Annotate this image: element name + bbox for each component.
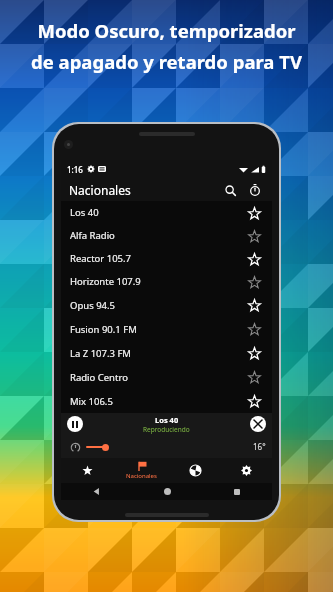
staticText: Reactor 105.7	[70, 252, 132, 265]
button[interactable]: Favorito	[244, 226, 264, 246]
staticText: Modo Oscuro, temporizador	[37, 18, 296, 43]
button[interactable]: Radio Centro	[61, 365, 272, 389]
staticText: Reproduciendo	[143, 425, 190, 434]
button[interactable]: Reactor 105.7	[61, 247, 272, 270]
staticText: de apagado y retardo para TV	[31, 49, 302, 74]
button[interactable]: Favorito	[244, 272, 264, 292]
staticText: Alfa Radio	[70, 229, 115, 242]
button[interactable]: Internacionales	[170, 458, 221, 483]
button[interactable]: Favorito	[244, 391, 264, 411]
button[interactable]: Horizonte 107.9	[61, 270, 272, 293]
button[interactable]: Mix 106.5	[61, 389, 272, 413]
button[interactable]: Atrás	[61, 483, 132, 500]
button[interactable]: Favorito	[244, 249, 264, 269]
staticText: Los 40	[70, 206, 99, 219]
button[interactable]: Opus 94.5	[61, 293, 272, 317]
staticText: Horizonte 107.9	[70, 275, 141, 288]
staticText: 16°	[253, 441, 266, 452]
button[interactable]: Favorito	[244, 343, 264, 363]
button[interactable]: La Z 107.3 FM	[61, 341, 272, 365]
button[interactable]: Inicio	[132, 483, 202, 500]
button[interactable]: Buscar	[220, 180, 240, 200]
staticText: Opus 94.5	[70, 299, 116, 312]
button[interactable]: Fusion 90.1 FM	[61, 317, 272, 341]
button[interactable]: Favorito	[244, 319, 264, 339]
button[interactable]: Favorito	[244, 295, 264, 315]
button[interactable]: Favorito	[244, 203, 264, 223]
button[interactable]: Temporizador	[245, 180, 265, 200]
staticText: La Z 107.3 FM	[70, 347, 131, 360]
staticText: Fusion 90.1 FM	[70, 323, 137, 336]
button[interactable]: Pausa	[67, 416, 83, 432]
button[interactable]: Temporizador de apagado	[67, 439, 83, 455]
button[interactable]: Los 40	[61, 201, 272, 224]
button[interactable]: Favorito	[244, 367, 264, 387]
button[interactable]: Cerrar	[250, 416, 266, 432]
button[interactable]: Alfa Radio	[61, 224, 272, 247]
button[interactable]: Recientes	[202, 483, 272, 500]
staticText: Nacionales	[126, 472, 157, 480]
button[interactable]: Volumen	[86, 440, 112, 454]
button[interactable]: Ajustes	[221, 458, 272, 483]
staticText: Mix 106.5	[70, 395, 113, 408]
button[interactable]: Favoritos	[61, 458, 113, 483]
staticText: 1:16	[67, 164, 83, 175]
staticText: Nacionales	[69, 182, 131, 198]
staticText: Radio Centro	[70, 371, 128, 384]
staticText: Los 40	[155, 415, 179, 425]
button[interactable]: Nacionales	[113, 458, 170, 483]
